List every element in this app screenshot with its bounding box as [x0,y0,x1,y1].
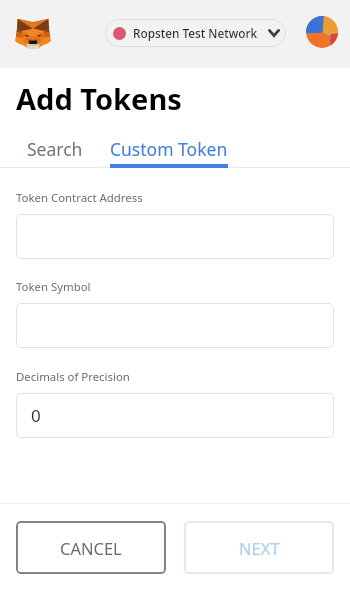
staticText: Custom Token [110,137,228,161]
button[interactable]: Account [306,16,338,48]
button[interactable]: CANCEL [16,521,166,574]
button[interactable] [16,303,334,348]
staticText: Decimals of Precision [16,369,130,385]
staticText: Token Contract Address [16,190,143,206]
staticText: Ropsten Test Network [133,25,258,41]
button[interactable]: 0 [16,393,334,438]
button[interactable]: Search [0,130,110,168]
staticText: Add Tokens [16,79,182,118]
button[interactable]: Custom Token [110,130,228,168]
staticText: NEXT [239,537,280,559]
staticText: CANCEL [60,537,122,559]
staticText: Token Symbol [16,279,91,295]
staticText: Search [27,137,83,161]
button[interactable]: NEXT [184,521,334,574]
button[interactable] [16,214,334,259]
button[interactable]: Ropsten Test Network [105,19,286,47]
staticText: 0 [31,404,41,427]
